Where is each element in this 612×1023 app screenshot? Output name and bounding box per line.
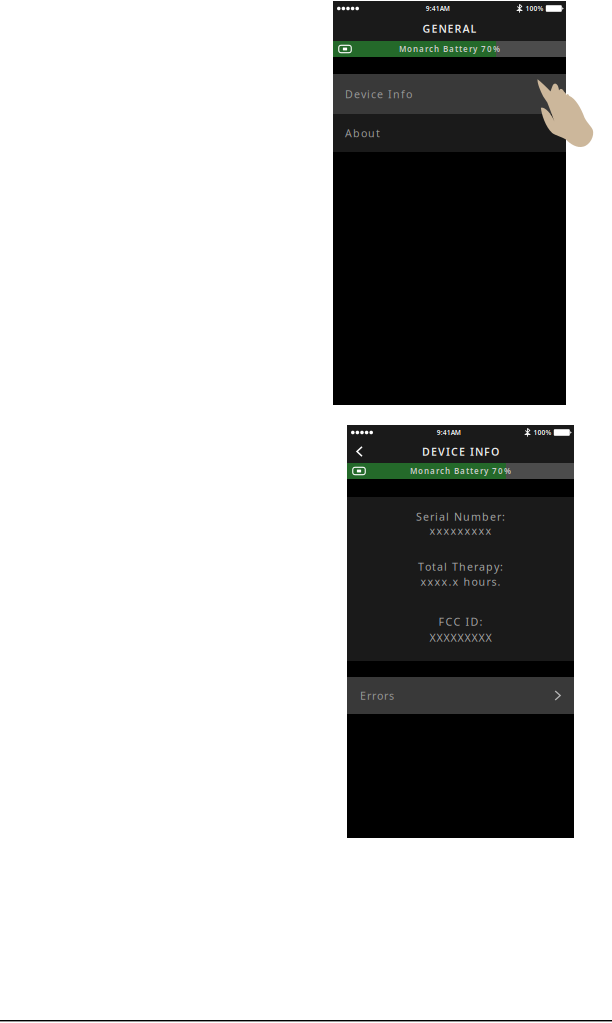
staticText: 100%: [534, 428, 552, 437]
button[interactable]: Back: [347, 441, 372, 462]
staticText: x x x x x x x x x: [429, 523, 491, 538]
staticText: 9:41AM: [437, 428, 461, 437]
staticText: F C C I D :: [438, 614, 482, 629]
staticText: S e r i a l N u m b e r :: [416, 509, 505, 524]
staticText: A b o u t: [345, 126, 380, 140]
staticText: T o t a l T h e r a p y :: [418, 559, 503, 574]
staticText: G E N E R A L: [422, 21, 476, 36]
staticText: E r r o r s: [360, 688, 394, 703]
staticText: M o n a r c h B a t t e r y 7 0 %: [399, 44, 500, 54]
staticText: 9:41AM: [426, 4, 450, 13]
button[interactable]: D e v i c e I n f o: [333, 74, 566, 114]
staticText: D e v i c e I n f o: [345, 87, 412, 101]
staticText: D E V I C E I N F O: [422, 444, 499, 459]
staticText: X X X X X X X X X: [429, 630, 491, 645]
button[interactable]: E r r o r s: [347, 677, 574, 714]
button[interactable]: A b o u t: [333, 114, 566, 152]
staticText: M o n a r c h B a t t e r y 7 0 %: [410, 466, 511, 476]
staticText: x x x x . x h o u r s .: [420, 574, 500, 589]
staticText: 100%: [526, 4, 544, 13]
